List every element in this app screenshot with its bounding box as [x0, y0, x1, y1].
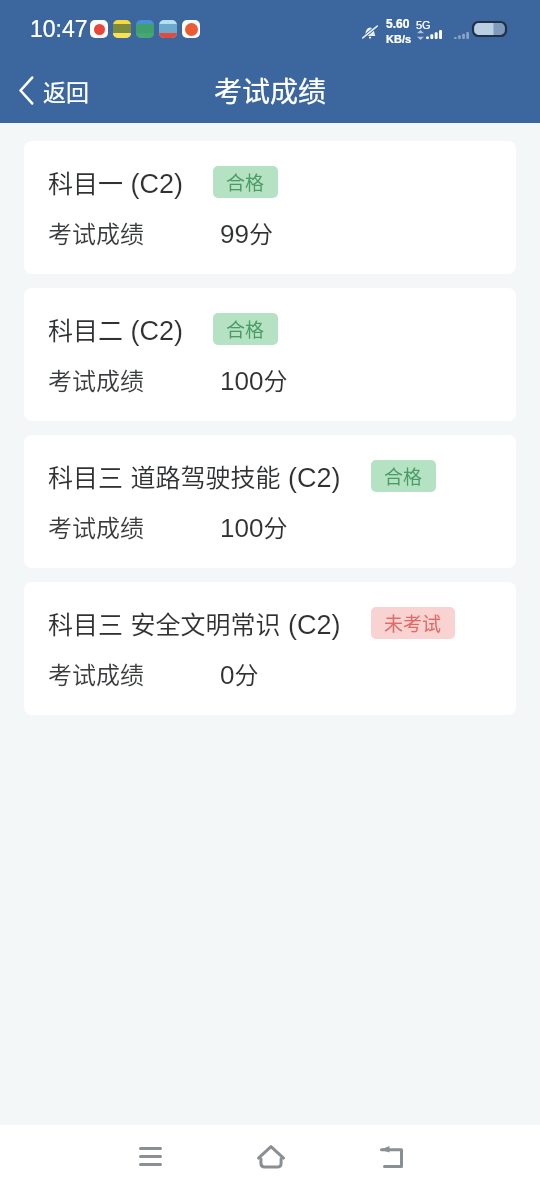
button[interactable]: 返回 [11, 66, 97, 115]
staticText: 科目一 (C2) [48, 164, 183, 200]
staticText: 考试成绩 [48, 362, 144, 397]
button[interactable]: 科目三 安全文明常识 (C2) [24, 582, 516, 715]
staticText: 科目二 (C2) [48, 311, 183, 347]
staticText: 返回 [43, 74, 89, 107]
button[interactable]: Back [359, 1125, 423, 1188]
other: Battery [473, 22, 506, 36]
button[interactable]: Home [239, 1125, 303, 1188]
staticText: 合格 [226, 315, 265, 343]
button[interactable]: 科目一 (C2) [24, 141, 516, 274]
staticText: 10:47 [30, 16, 88, 42]
staticText: 99分 [220, 215, 273, 250]
staticText: 考试成绩 [48, 215, 144, 250]
other: Silent mode [361, 25, 379, 39]
staticText: 100分 [220, 509, 288, 544]
staticText: 考试成绩 [48, 509, 144, 544]
staticText: KB/s [386, 33, 412, 45]
staticText: 科目三 安全文明常识 (C2) [48, 605, 341, 641]
staticText: 0分 [220, 656, 259, 691]
staticText: 未考试 [384, 609, 442, 637]
staticText: 100分 [220, 362, 288, 397]
staticText: 5.60 [386, 17, 410, 30]
button[interactable]: Recent apps [118, 1125, 182, 1188]
staticText: 科目三 道路驾驶技能 (C2) [48, 458, 341, 494]
staticText: 考试成绩 [214, 70, 327, 111]
button[interactable]: 科目二 (C2) [24, 288, 516, 421]
staticText: 合格 [384, 462, 423, 490]
staticText: 5G [416, 19, 431, 31]
button[interactable]: 科目三 道路驾驶技能 (C2) [24, 435, 516, 568]
staticText: 考试成绩 [48, 656, 144, 691]
staticText: 合格 [226, 168, 265, 196]
